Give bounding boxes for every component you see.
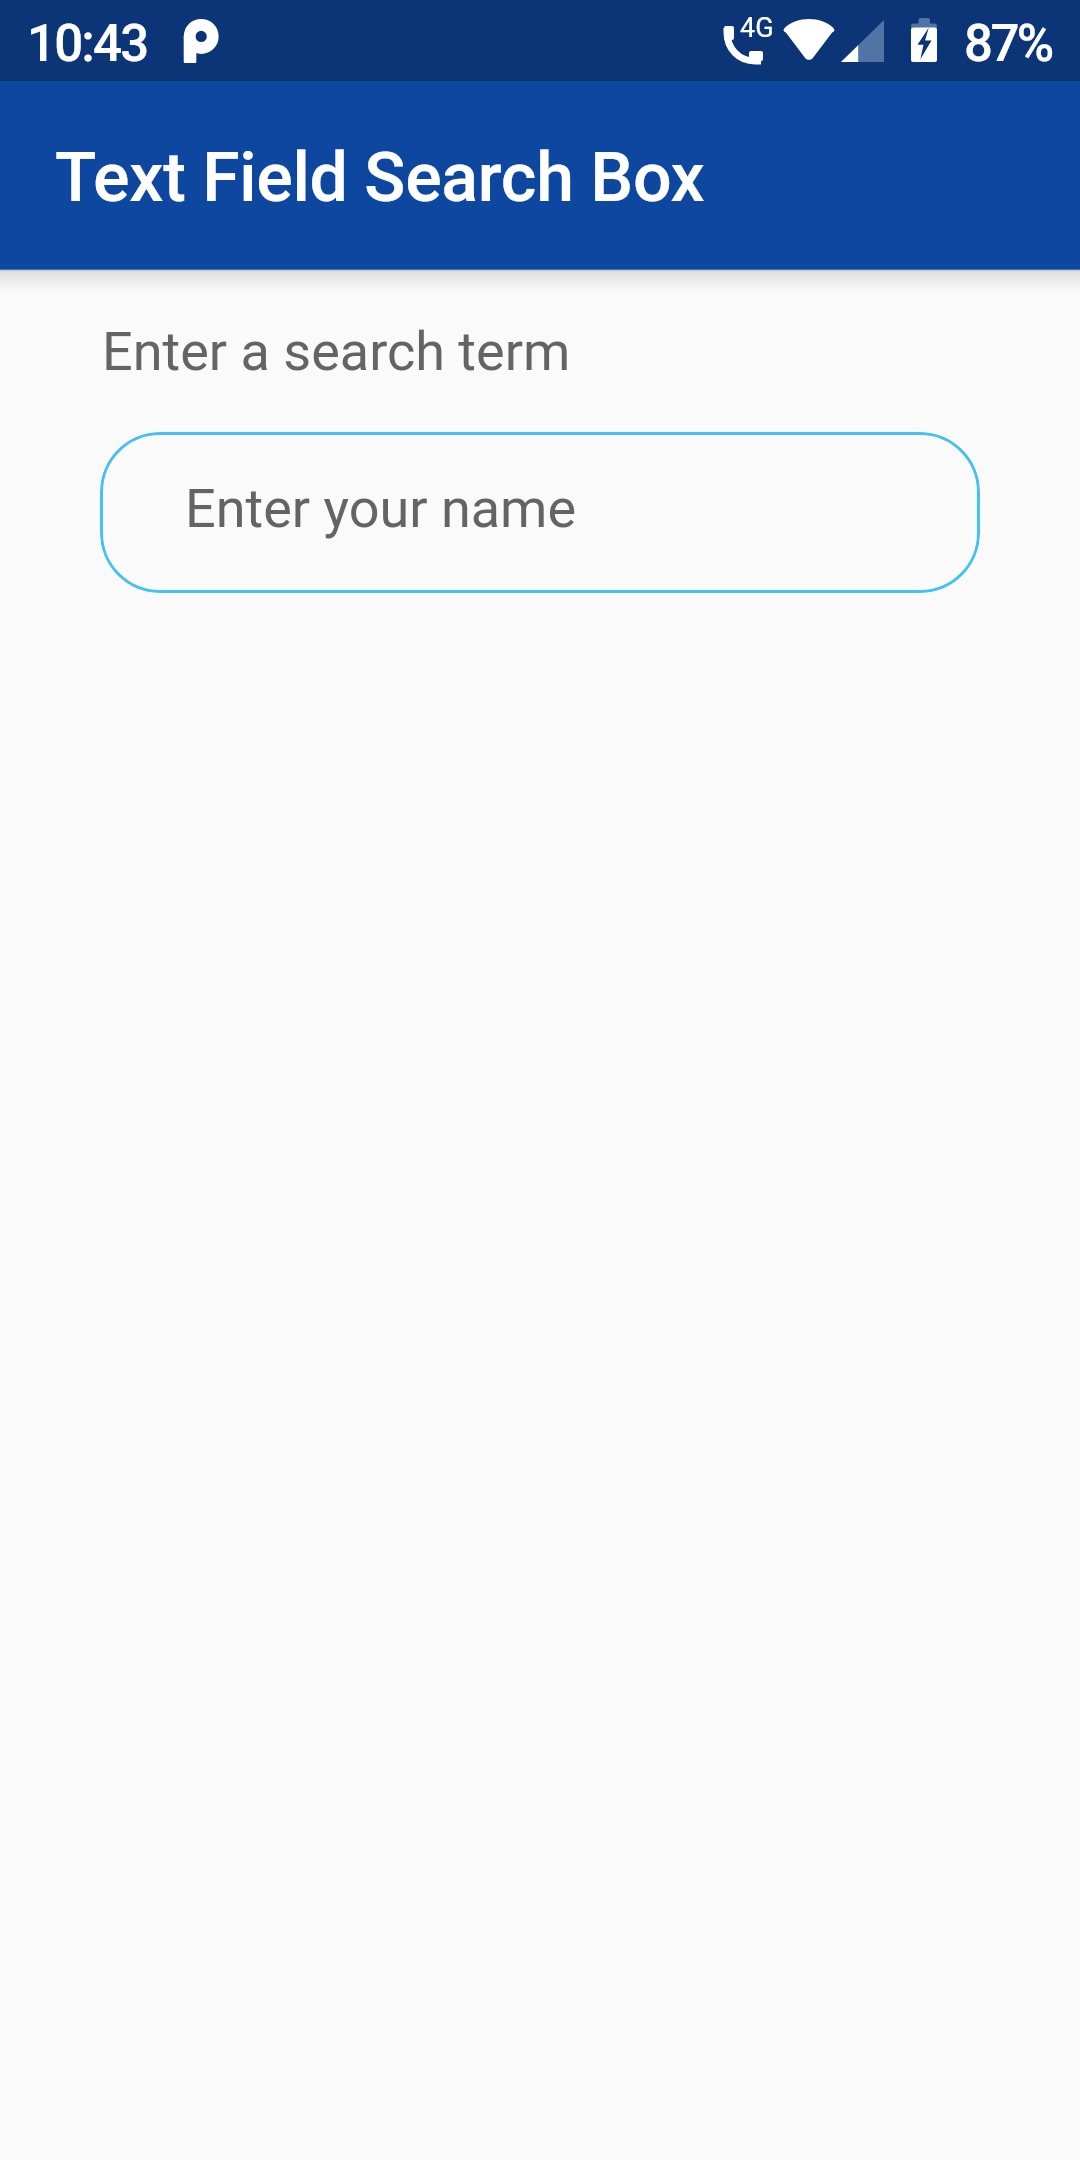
other: Wi-Fi (783, 19, 835, 60)
button[interactable]: Enter your name (100, 432, 980, 593)
other: Mobile data 4G (723, 18, 769, 64)
staticText: Enter your name (185, 477, 577, 540)
other: Pandora notification (183, 19, 219, 63)
staticText: Enter a search term (102, 320, 571, 383)
other: Battery 87 percent charging (911, 18, 937, 62)
staticText: Text Field Search Box (55, 138, 705, 218)
staticText: 87% (964, 14, 1052, 74)
staticText: 10:43 (27, 14, 148, 74)
staticText: 4G (740, 12, 774, 44)
other: Cellular signal (841, 20, 884, 62)
